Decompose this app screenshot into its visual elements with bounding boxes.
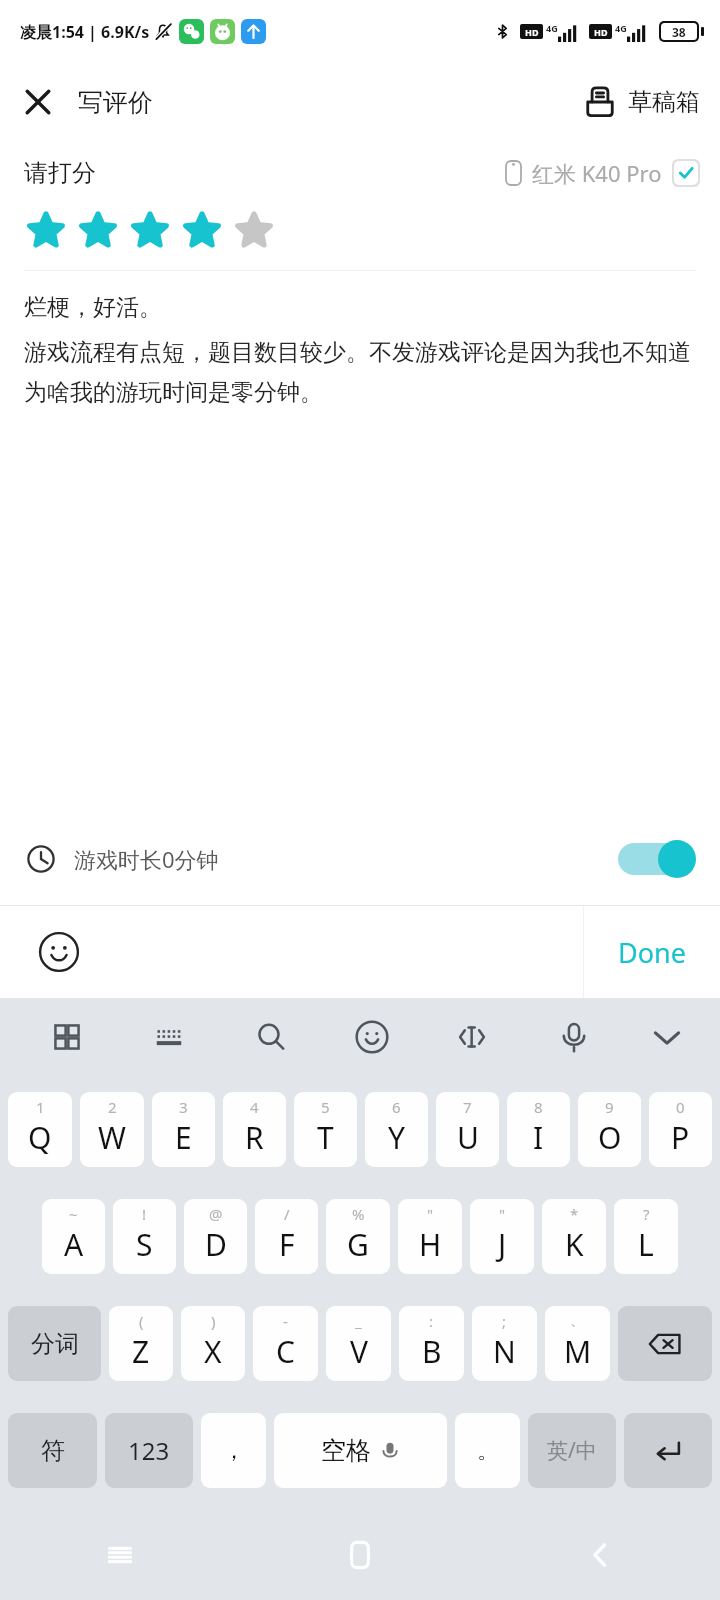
staticText: G bbox=[347, 1224, 369, 1265]
staticText: 请打分 bbox=[24, 158, 96, 188]
staticText: T bbox=[317, 1117, 334, 1158]
button[interactable]: 9 bbox=[578, 1092, 641, 1167]
button[interactable]: 、 bbox=[545, 1306, 610, 1381]
staticText: / bbox=[284, 1204, 290, 1224]
button[interactable]: * bbox=[542, 1199, 606, 1274]
button[interactable]: Rate 3 stars bbox=[124, 204, 176, 256]
staticText: ， bbox=[223, 1437, 245, 1465]
staticText: 3 bbox=[179, 1097, 188, 1117]
staticText: O bbox=[598, 1117, 622, 1158]
button[interactable]: ) bbox=[181, 1306, 245, 1381]
staticText: R bbox=[245, 1117, 264, 1158]
staticText: ! bbox=[142, 1204, 147, 1224]
button[interactable]: Keyboard layouts bbox=[16, 1006, 118, 1068]
staticText: ; bbox=[502, 1311, 507, 1331]
staticText: 4G bbox=[546, 22, 558, 34]
button[interactable]: 英/中 bbox=[528, 1413, 616, 1488]
staticText: 9 bbox=[605, 1097, 614, 1117]
button[interactable]: ? bbox=[614, 1199, 678, 1274]
staticText: 4 bbox=[250, 1097, 259, 1117]
staticText: P bbox=[671, 1117, 690, 1158]
button[interactable]: @ bbox=[184, 1199, 247, 1274]
button[interactable]: 2 bbox=[80, 1092, 144, 1167]
button[interactable]: 空格 bbox=[274, 1413, 447, 1488]
button[interactable]: ， bbox=[201, 1413, 266, 1488]
button[interactable]: Emoji bbox=[32, 925, 86, 979]
staticText: Z bbox=[132, 1331, 150, 1372]
button[interactable]: Enter bbox=[624, 1413, 712, 1488]
button[interactable]: 分词 bbox=[8, 1306, 101, 1381]
button[interactable]: 123 bbox=[105, 1413, 193, 1488]
staticText: 5 bbox=[321, 1097, 330, 1117]
staticText: 游戏时长0分钟 bbox=[74, 844, 219, 874]
button[interactable]: % bbox=[326, 1199, 390, 1274]
staticText: H bbox=[419, 1224, 442, 1265]
button[interactable]: 4 bbox=[223, 1092, 286, 1167]
staticText: 分词 bbox=[31, 1329, 79, 1359]
staticText: " bbox=[499, 1204, 506, 1224]
button[interactable]: Move cursor bbox=[422, 1006, 523, 1068]
button[interactable]: ; bbox=[472, 1306, 537, 1381]
staticText: X bbox=[204, 1331, 222, 1372]
button[interactable]: Keyboard bbox=[118, 1006, 220, 1068]
button[interactable]: Show play time bbox=[616, 839, 696, 879]
button[interactable]: Search bbox=[220, 1006, 321, 1068]
button[interactable]: 0 bbox=[649, 1092, 712, 1167]
button[interactable]: Emoji bbox=[321, 1006, 422, 1068]
staticText: 4G bbox=[615, 22, 627, 34]
button[interactable]: Rate 1 stars bbox=[20, 204, 72, 256]
button[interactable]: Backspace bbox=[618, 1306, 712, 1381]
button[interactable]: Rate 2 stars bbox=[72, 204, 124, 256]
button[interactable]: Rate 4 stars bbox=[176, 204, 228, 256]
button[interactable]: ! bbox=[113, 1199, 176, 1274]
staticText: @ bbox=[209, 1204, 223, 1224]
button[interactable]: 7 bbox=[436, 1092, 499, 1167]
staticText: 。 bbox=[477, 1437, 499, 1465]
staticText: : bbox=[429, 1311, 434, 1331]
button[interactable]: " bbox=[470, 1199, 534, 1274]
staticText: ) bbox=[211, 1311, 216, 1331]
button[interactable]: Rate 5 stars bbox=[228, 204, 280, 256]
button[interactable]: Close bbox=[0, 64, 76, 140]
button[interactable]: ( bbox=[109, 1306, 173, 1381]
staticText: * bbox=[570, 1204, 579, 1224]
button[interactable]: - bbox=[253, 1306, 318, 1381]
button[interactable]: Hide keyboard bbox=[624, 1006, 710, 1068]
staticText: 2 bbox=[108, 1097, 117, 1117]
button[interactable]: 5 bbox=[294, 1092, 357, 1167]
staticText: ~ bbox=[69, 1204, 78, 1224]
button[interactable]: / bbox=[255, 1199, 318, 1274]
staticText: 1 bbox=[36, 1097, 45, 1117]
button[interactable]: 1 bbox=[8, 1092, 72, 1167]
staticText: 草稿箱 bbox=[628, 87, 700, 117]
staticText: M bbox=[564, 1331, 592, 1372]
staticText: 写评价 bbox=[78, 87, 153, 118]
button[interactable]: Voice input bbox=[523, 1006, 624, 1068]
staticText: V bbox=[350, 1331, 368, 1372]
button[interactable]: : bbox=[399, 1306, 464, 1381]
button[interactable]: Recents bbox=[0, 1510, 240, 1600]
staticText: 空格 bbox=[321, 1435, 371, 1466]
staticText: 38 bbox=[672, 24, 686, 40]
button[interactable]: " bbox=[398, 1199, 462, 1274]
staticText: 凌晨1:54 | 6.9K/s bbox=[20, 21, 150, 43]
staticText: - bbox=[283, 1311, 288, 1331]
button[interactable]: _ bbox=[326, 1306, 391, 1381]
staticText: Q bbox=[28, 1117, 52, 1158]
button[interactable]: 红米 K40 Pro bbox=[505, 158, 700, 188]
button[interactable]: 。 bbox=[455, 1413, 520, 1488]
button[interactable]: 草稿箱 bbox=[568, 74, 720, 130]
button[interactable]: ~ bbox=[42, 1199, 105, 1274]
button[interactable]: Done bbox=[584, 906, 720, 998]
button[interactable]: 符 bbox=[8, 1413, 97, 1488]
button[interactable]: 8 bbox=[507, 1092, 570, 1167]
staticText: ? bbox=[643, 1204, 650, 1224]
staticText: B bbox=[422, 1331, 442, 1372]
staticText: 、 bbox=[570, 1311, 585, 1330]
button[interactable]: 游戏时长0分钟 bbox=[0, 813, 720, 905]
button[interactable]: 3 bbox=[152, 1092, 215, 1167]
button[interactable]: 6 bbox=[365, 1092, 428, 1167]
staticText: 8 bbox=[534, 1097, 543, 1117]
